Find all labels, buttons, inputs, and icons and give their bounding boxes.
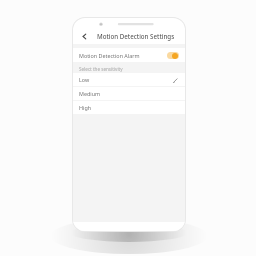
staticText: Low (79, 76, 171, 83)
button[interactable]: Motion Detection Alarm toggle (167, 52, 179, 59)
button[interactable]: Low (73, 73, 185, 86)
button[interactable]: Edit sensitivity (171, 76, 179, 84)
staticText: High (79, 104, 179, 111)
button[interactable]: Back (78, 30, 90, 42)
staticText: Motion Detection Alarm (79, 52, 167, 59)
staticText: Select the sensitivity (79, 66, 123, 72)
button[interactable]: High (73, 101, 185, 114)
staticText: Motion Detection Settings (97, 32, 175, 40)
button[interactable]: Motion Detection Alarm (73, 48, 185, 62)
staticText: Medium (79, 90, 179, 97)
button[interactable]: Medium (73, 87, 185, 100)
